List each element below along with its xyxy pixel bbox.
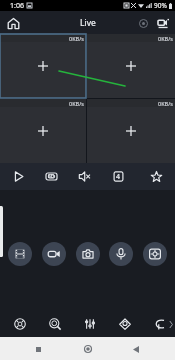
- button[interactable]: Favourite: [144, 163, 168, 190]
- staticText: SD: [48, 173, 55, 180]
- button[interactable]: 0KB/s: [0, 34, 86, 98]
- button[interactable]: Stream quality SD: [39, 163, 63, 190]
- staticText: 1:06: [10, 1, 24, 11]
- staticText: 0KB/s: [69, 100, 84, 107]
- button[interactable]: Devices: [153, 13, 173, 33]
- button[interactable]: Microphone: [109, 242, 133, 266]
- button[interactable]: Recents: [28, 339, 48, 359]
- button[interactable]: Mute: [72, 163, 96, 190]
- button[interactable]: Play: [6, 163, 30, 190]
- button[interactable]: Playback: [8, 242, 32, 266]
- button[interactable]: 0KB/s: [87, 34, 175, 98]
- button[interactable]: Home: [3, 13, 23, 33]
- button[interactable]: Snapshot: [76, 242, 100, 266]
- button[interactable]: Zoom: [37, 311, 72, 337]
- button[interactable]: PTZ control: [2, 311, 37, 337]
- staticText: 0KB/s: [69, 35, 84, 42]
- button[interactable]: Home: [78, 339, 98, 359]
- staticText: 0KB/s: [158, 100, 173, 107]
- button[interactable]: 0KB/s: [87, 99, 175, 163]
- staticText: Live: [80, 17, 96, 29]
- staticText: 0KB/s: [158, 35, 173, 42]
- staticText: 90%: [154, 1, 167, 10]
- button[interactable]: Focus: [143, 242, 167, 266]
- button[interactable]: Split screen 4: [106, 163, 130, 190]
- button[interactable]: Record status: [133, 13, 153, 33]
- button[interactable]: Two way talk: [142, 311, 175, 337]
- button[interactable]: Night vision: [107, 311, 142, 337]
- button[interactable]: Back: [126, 339, 146, 359]
- button[interactable]: 0KB/s: [0, 99, 86, 163]
- button[interactable]: Record video: [42, 242, 66, 266]
- button[interactable]: Image settings: [72, 311, 107, 337]
- staticText: 4: [116, 172, 121, 182]
- button[interactable]: Open drawer: [0, 206, 3, 257]
